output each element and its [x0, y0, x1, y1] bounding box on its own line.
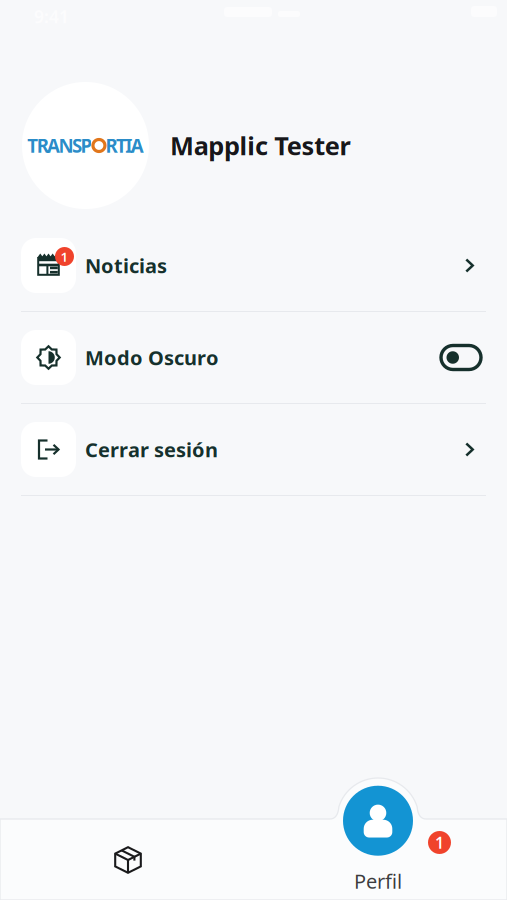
button[interactable]: Envíos: [48, 820, 208, 900]
button[interactable]: Modo Oscuro: [0, 312, 507, 403]
staticText: Modo Oscuro: [85, 344, 219, 371]
staticText: Perfil: [354, 868, 402, 894]
staticText: Noticias: [85, 252, 167, 279]
staticText: TRANSP: [27, 133, 92, 158]
button[interactable]: Cerrar sesión: [0, 404, 507, 495]
staticText: Cerrar sesión: [85, 436, 218, 463]
button[interactable]: 1: [0, 220, 507, 311]
button[interactable]: Perfil: [318, 785, 438, 895]
staticText: 1: [435, 832, 444, 853]
staticText: RTIA: [105, 133, 144, 158]
staticText: 1: [60, 248, 68, 265]
staticText: Mapplic Tester: [170, 129, 350, 162]
